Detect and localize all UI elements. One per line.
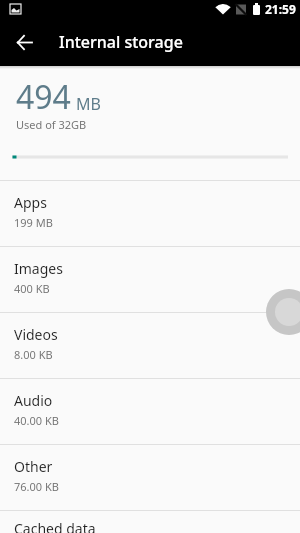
staticText: Other [14,457,53,476]
staticText: Videos [14,325,58,344]
button[interactable]: Apps [0,180,300,246]
staticText: 40.00 KB [14,413,59,428]
staticText: Internal storage [59,31,183,53]
button[interactable]: Other [0,444,300,510]
button[interactable]: Cached data [0,510,300,533]
button[interactable]: Videos [0,312,300,378]
staticText: 199 MB [14,215,53,230]
button[interactable]: Images [0,246,300,312]
staticText: 76.00 KB [14,479,59,494]
staticText: Apps [14,193,47,212]
button[interactable]: Audio [0,378,300,444]
staticText: 400 KB [14,281,50,296]
staticText: Audio [14,391,53,410]
staticText: Cached data [14,519,96,533]
staticText: Used of 32GB [16,117,87,132]
staticText: 8.00 KB [14,347,53,362]
staticText: Images [14,259,63,278]
staticText: 494 [16,75,71,119]
button[interactable] [0,18,48,66]
staticText: MB [76,93,101,115]
staticText: 21:59 [265,1,296,17]
